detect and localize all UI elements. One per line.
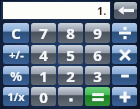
button[interactable]: Backspace — [114, 2, 137, 19]
staticText: 4 — [39, 45, 48, 64]
staticText: 9 — [93, 23, 102, 43]
button[interactable]: Multiply — [112, 45, 137, 64]
button[interactable]: 3 — [85, 66, 110, 85]
staticText: 2 — [66, 66, 75, 85]
button[interactable]: Display — [6, 2, 107, 19]
staticText: C — [11, 23, 21, 43]
button[interactable]: 0 — [31, 87, 56, 106]
button[interactable]: C — [3, 23, 29, 43]
staticText: 8 — [66, 23, 75, 43]
button[interactable]: Equals — [85, 87, 110, 106]
staticText: 1 — [39, 66, 48, 85]
button[interactable]: +/- — [3, 45, 29, 64]
staticText: +/- — [9, 47, 24, 62]
button[interactable]: % — [3, 66, 29, 85]
button[interactable]: 2 — [58, 66, 83, 85]
staticText: 7 — [39, 23, 48, 43]
staticText: 0 — [39, 87, 48, 106]
button[interactable]: 1/x — [3, 87, 29, 106]
button[interactable]: 8 — [58, 23, 83, 43]
button[interactable]: 1 — [31, 66, 56, 85]
staticText: 1. — [97, 3, 107, 18]
button[interactable]: 7 — [31, 23, 56, 43]
staticText: 3 — [93, 66, 102, 85]
button[interactable]: Decimal point — [58, 87, 83, 106]
button[interactable]: 6 — [85, 45, 110, 64]
button[interactable]: Minus — [112, 66, 137, 85]
staticText: 1/x — [7, 89, 25, 104]
staticText: 6 — [93, 45, 102, 64]
button[interactable]: Divide — [112, 23, 137, 43]
button[interactable]: 5 — [58, 45, 83, 64]
button[interactable]: Plus — [112, 87, 137, 106]
button[interactable]: 4 — [31, 45, 56, 64]
button[interactable]: 9 — [85, 23, 110, 43]
staticText: % — [10, 67, 22, 85]
staticText: 5 — [66, 45, 75, 64]
